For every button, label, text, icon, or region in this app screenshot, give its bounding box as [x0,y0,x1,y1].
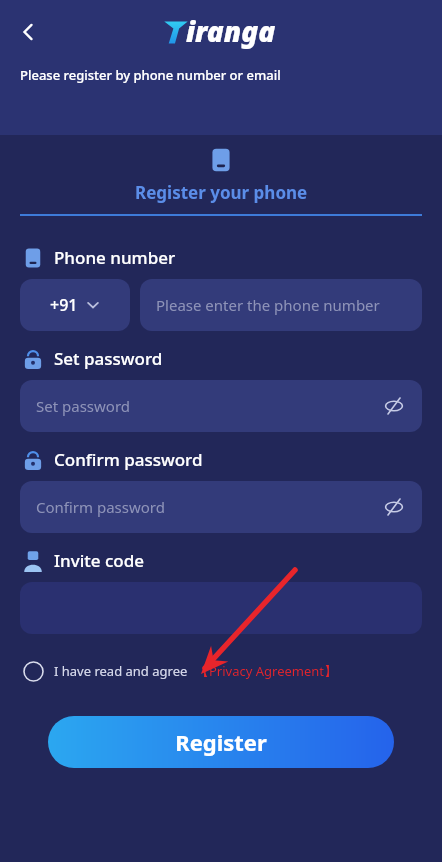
staticText: Register your phone [135,181,308,204]
button[interactable]: Set password [20,380,422,432]
button[interactable]: Register [48,716,394,768]
staticText: Confirm password [36,497,165,517]
button[interactable]: Please enter the phone number [140,279,422,331]
staticText: Please enter the phone number [156,295,380,315]
button[interactable]: +91 [20,279,130,331]
staticText: Invite code [54,549,144,572]
staticText: iranga [186,12,276,50]
button[interactable]: Show password [378,390,410,422]
button[interactable]: 【Privacy Agreement】 [196,662,338,680]
button[interactable]: Show password [378,491,410,523]
button[interactable]: Back [6,10,50,54]
staticText: Set password [36,396,131,416]
staticText: 【Privacy Agreement】 [196,662,338,680]
staticText: Phone number [54,246,176,269]
staticText: Set password [54,347,163,370]
staticText: I have read and agree [54,662,188,680]
button[interactable] [20,582,422,634]
button[interactable]: Register your phone [0,147,442,216]
button[interactable]: Confirm password [20,481,422,533]
staticText: +91 [50,294,78,316]
staticText: Please register by phone number or email [20,66,281,84]
staticText: Register [175,727,267,757]
staticText: Confirm password [54,448,203,471]
button[interactable]: Agree [18,656,48,686]
